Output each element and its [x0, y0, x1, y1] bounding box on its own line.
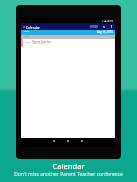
button[interactable]: WED [21, 35, 115, 39]
staticText: Parent Teacher [32, 40, 51, 44]
staticText: WED [24, 35, 30, 38]
staticText: Don't miss another Parent Teacher confer… [0, 171, 137, 178]
staticText: 8:00 [25, 40, 30, 43]
button[interactable]: Search [102, 23, 106, 30]
staticText: Lincoln High [32, 42, 45, 45]
button[interactable]: Recent apps [81, 138, 83, 147]
button[interactable]: 8:00 [21, 39, 115, 47]
button[interactable]: Open navigation drawer [21, 23, 26, 30]
button[interactable]: Back [53, 138, 55, 147]
staticText: Calendar [0, 161, 137, 171]
button[interactable]: More options [109, 23, 113, 30]
button[interactable]: TUE [21, 30, 115, 35]
button[interactable]: TODAY [90, 23, 99, 30]
button[interactable]: Home [67, 138, 69, 147]
staticText: Aug 16, 2016 [97, 30, 113, 34]
staticText: TODAY [90, 25, 99, 28]
staticText: TUE [24, 30, 29, 33]
staticText: Calendar [26, 25, 40, 29]
